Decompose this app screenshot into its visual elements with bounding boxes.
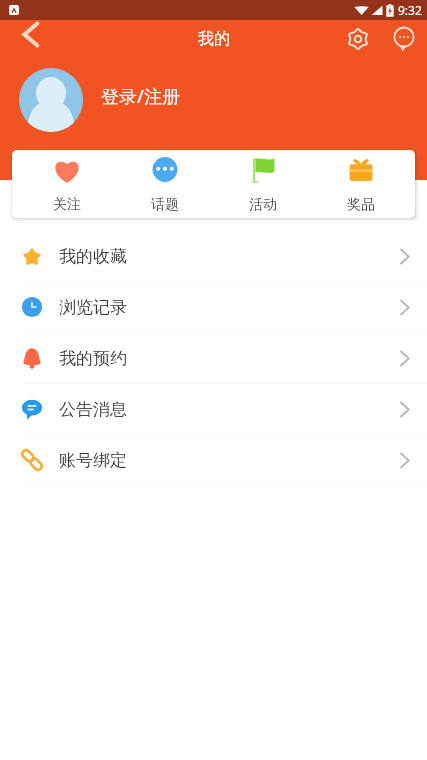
button[interactable]: Back	[0, 20, 48, 58]
staticText: 公告消息	[59, 399, 127, 420]
staticText: 话题	[151, 196, 179, 214]
staticText: 登录/注册	[101, 84, 180, 109]
staticText: 活动	[249, 196, 277, 214]
button[interactable]: 活动	[214, 150, 312, 218]
staticText: 9:32	[398, 2, 422, 18]
staticText: 我的收藏	[59, 246, 127, 267]
button[interactable]: 奖品	[312, 150, 410, 218]
button[interactable]: 账号绑定	[0, 435, 427, 486]
button[interactable]: 公告消息	[0, 384, 427, 435]
staticText: 浏览记录	[59, 297, 127, 318]
button[interactable]: 浏览记录	[0, 282, 427, 333]
button[interactable]: Messages	[381, 20, 427, 58]
staticText: 我的	[198, 29, 230, 49]
button[interactable]: 登录/注册	[0, 58, 427, 141]
button[interactable]: 关注	[18, 150, 116, 218]
button[interactable]: 我的收藏	[0, 231, 427, 282]
staticText: 奖品	[347, 196, 375, 214]
button[interactable]: Settings	[335, 20, 381, 58]
button[interactable]: 我的预约	[0, 333, 427, 384]
button[interactable]: 话题	[116, 150, 214, 218]
staticText: 关注	[53, 196, 81, 214]
staticText: 账号绑定	[59, 450, 127, 471]
staticText: 我的预约	[59, 348, 127, 369]
